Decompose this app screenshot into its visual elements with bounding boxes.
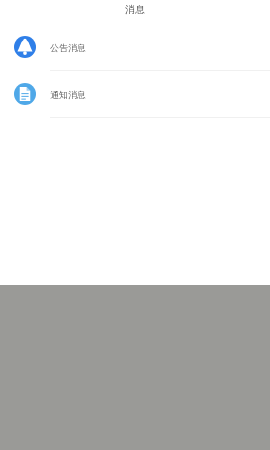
button[interactable]: 通知消息 xyxy=(0,71,270,117)
other: 通知消息 xyxy=(14,83,36,105)
other: 公告消息 xyxy=(14,36,36,58)
button[interactable]: 公告消息 xyxy=(0,24,270,70)
staticText: 消息 xyxy=(125,3,145,16)
staticText: 通知消息 xyxy=(50,89,86,100)
staticText: 公告消息 xyxy=(50,42,86,53)
